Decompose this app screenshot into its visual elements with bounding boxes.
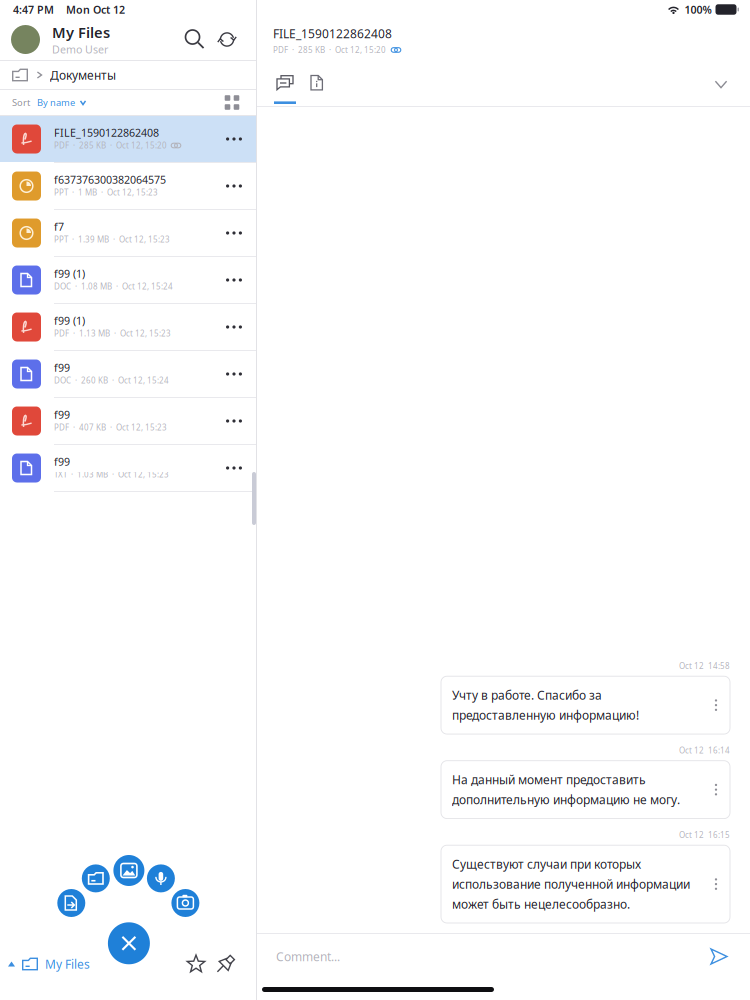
button[interactable]: Refresh [211,24,243,54]
button[interactable]: Pinned [211,949,241,979]
button[interactable]: Voice recording [147,864,175,892]
button[interactable]: New folder [82,864,110,892]
button[interactable]: f637376300382064575 [0,163,256,209]
staticText: Oct 12 14:58 [679,661,730,671]
staticText: f99 (1) [54,313,85,328]
staticText: f99 [54,407,70,422]
button[interactable]: f99 [0,351,256,397]
button[interactable]: Photo library [113,855,144,886]
staticText: Существуют случаи при которых [452,856,641,872]
staticText: Документы [50,67,116,83]
staticText: 4:47 PM [13,2,54,17]
button[interactable]: FILE_1590122862408 [0,116,256,162]
staticText: Comment... [276,948,340,964]
button[interactable]: Close menu [108,922,150,964]
button[interactable]: Upload file [57,889,85,917]
staticText: My Files [52,23,110,42]
button[interactable]: Favorites [181,949,211,979]
staticText: предоставленную информацию! [452,707,639,723]
staticText: PDF · 1.13 MB · Oct 12, 15:23 [54,328,171,339]
staticText: f637376300382064575 [54,172,166,187]
button[interactable]: Search [179,24,211,54]
staticText: дополнительную информацию не могу. [452,792,680,807]
button[interactable]: Grid view [220,90,244,114]
staticText: DOC · 1.08 MB · Oct 12, 15:24 [54,281,173,292]
staticText: PDF · 285 KB · Oct 12, 15:20 [54,140,167,151]
staticText: By name [37,96,75,109]
staticText: PDF · 407 KB · Oct 12, 15:23 [54,422,167,433]
staticText: FILE_1590122862408 [54,125,159,140]
staticText: PPT · 1 MB · Oct 12, 15:23 [54,187,158,198]
staticText: PDF · 285 KB · Oct 12, 15:20 [273,45,386,55]
button[interactable]: Camera [171,889,199,917]
button[interactable]: f99 (1) [0,304,256,350]
button[interactable]: My Files [0,942,90,986]
staticText: PPT · 1.39 MB · Oct 12, 15:23 [54,234,170,245]
staticText: Mon Oct 12 [66,2,125,17]
staticText: f99 [54,454,70,469]
staticText: f7 [54,219,64,234]
staticText: может быть нецелесообразно. [452,896,630,912]
staticText: f99 (1) [54,266,85,281]
staticText: На данный момент предоставить [452,772,646,788]
button[interactable]: f99 [0,398,256,444]
staticText: DOC · 260 KB · Oct 12, 15:24 [54,375,169,386]
staticText: Demo User [52,42,108,56]
button[interactable]: f7 [0,210,256,256]
staticText: использование полученной информации [452,876,690,892]
staticText: FILE_1590122862408 [273,26,392,42]
button[interactable]: Collapse panel [706,69,736,99]
staticText: f99 [54,360,70,375]
button[interactable]: f99 (1) [0,257,256,303]
button[interactable]: By name [30,90,87,114]
staticText: TXT · 1.03 MB · Oct 12, 15:23 [54,469,169,480]
staticText: Учту в работе. Спасибо за [452,687,602,703]
staticText: Oct 12 16:14 [679,745,730,756]
button[interactable]: Details [306,64,340,104]
staticText: 100% [684,2,711,17]
staticText: Oct 12 16:15 [679,830,730,840]
staticText: My Files [45,956,90,972]
button[interactable]: Comments [257,64,306,104]
button[interactable]: Send [704,941,734,971]
staticText: Sort [12,96,30,109]
button[interactable]: f99 [0,445,256,491]
